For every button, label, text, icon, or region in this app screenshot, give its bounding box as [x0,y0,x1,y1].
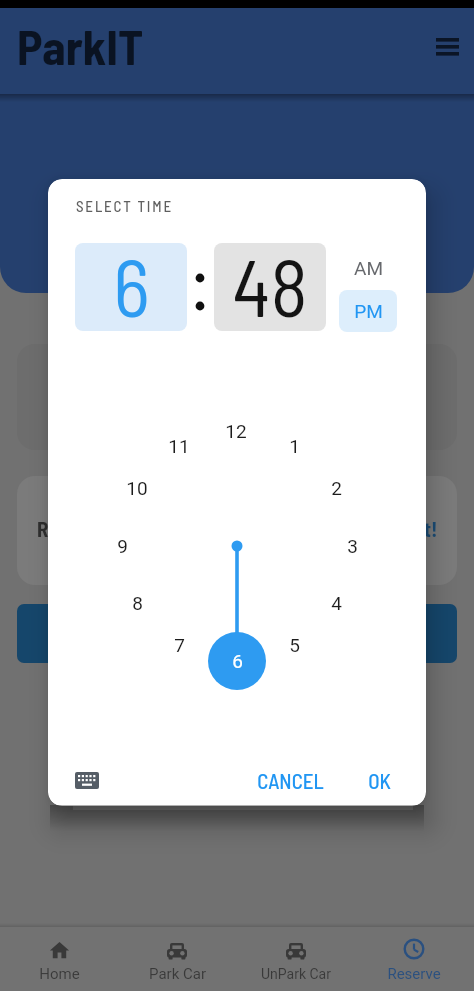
button[interactable]: Home [13,930,105,984]
staticText: Home [39,965,80,983]
staticText: 12 [225,420,247,442]
button[interactable]: 6 [221,645,253,677]
button[interactable]: 2 [320,472,352,504]
button[interactable]: CANCEL [252,765,328,795]
staticText: Reserve [387,965,441,983]
staticText: 2 [331,477,342,499]
staticText: PM [354,300,383,322]
staticText: ParkIT [17,17,144,75]
staticText: SELECT TIME [76,197,173,215]
button[interactable]: AM [339,247,397,289]
staticText: 6 [113,238,150,326]
staticText: 11 [168,435,190,457]
button[interactable]: UnPark Car [250,930,342,984]
staticText: 5 [289,634,300,656]
staticText: 7 [174,634,185,656]
staticText: t! [424,516,438,541]
button[interactable]: 12 [220,415,252,447]
staticText: 6 [232,650,243,672]
staticText: 8 [132,592,143,614]
button[interactable] [17,604,457,663]
staticText: Park Car [149,965,206,983]
button[interactable] [430,30,464,62]
staticText: OK [368,768,391,793]
button[interactable] [68,763,106,797]
button[interactable]: 9 [106,530,138,562]
staticText: 48 [232,238,308,326]
button[interactable]: Reserve [368,930,460,984]
button[interactable]: 48 [214,243,326,331]
staticText: 10 [126,477,148,499]
button[interactable]: 3 [336,530,368,562]
button[interactable]: 1 [278,430,310,462]
staticText: UnPark Car [261,966,331,982]
staticText: CANCEL [257,768,324,793]
staticText: 9 [117,535,128,557]
staticText: R [37,516,49,541]
staticText: 3 [347,535,358,557]
button[interactable]: OK [357,765,401,795]
button[interactable]: 11 [163,430,195,462]
button[interactable]: 7 [163,629,195,661]
button[interactable]: 4 [320,587,352,619]
button[interactable]: 5 [278,629,310,661]
staticText: 4 [331,592,342,614]
button[interactable]: 10 [121,472,153,504]
staticText: AM [354,257,383,279]
staticText: 1 [289,435,300,457]
button[interactable]: 6 [75,243,187,331]
button[interactable]: Park Car [131,930,223,984]
button[interactable]: PM [339,290,397,332]
button[interactable]: 8 [121,587,153,619]
